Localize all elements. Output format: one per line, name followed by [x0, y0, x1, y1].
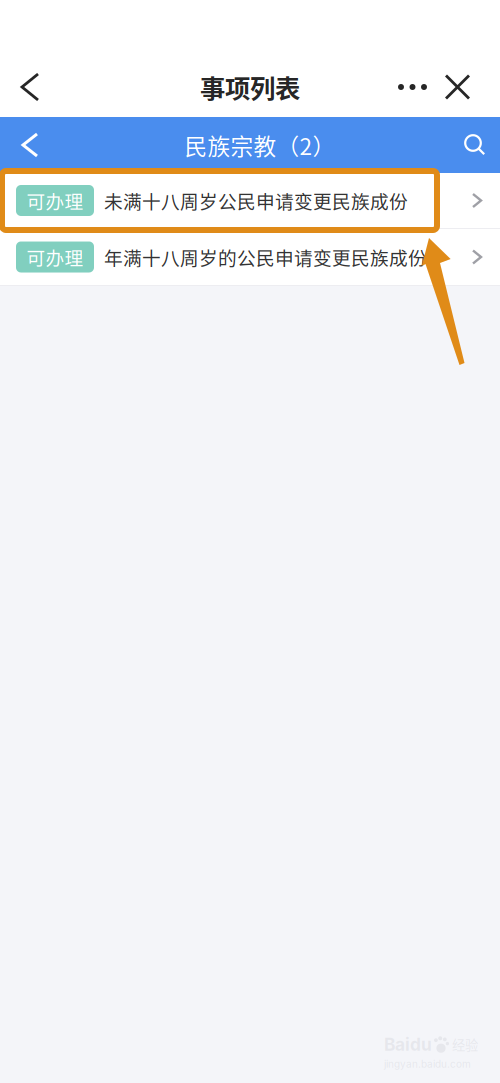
staticText: 事项列表	[200, 69, 300, 105]
button[interactable]: 可办理	[0, 229, 500, 285]
button[interactable]: Search	[446, 117, 500, 173]
button[interactable]: More	[389, 57, 436, 117]
button[interactable]: Back	[0, 117, 55, 173]
button[interactable]: Back	[0, 57, 52, 117]
button[interactable]: Close	[436, 57, 500, 117]
staticText: Baidu	[384, 1034, 432, 1055]
staticText: 未满十八周岁公民申请变更民族成份	[104, 187, 408, 214]
staticText: 可办理	[26, 187, 83, 214]
staticText: 年满十八周岁的公民申请变更民族成份	[104, 243, 427, 270]
staticText: 民族宗教（2）	[184, 129, 335, 161]
button[interactable]: 可办理	[0, 173, 500, 228]
staticText: jingyan.baidu.com	[384, 1058, 471, 1070]
staticText: 经验	[452, 1035, 478, 1054]
staticText: 可办理	[26, 243, 83, 270]
